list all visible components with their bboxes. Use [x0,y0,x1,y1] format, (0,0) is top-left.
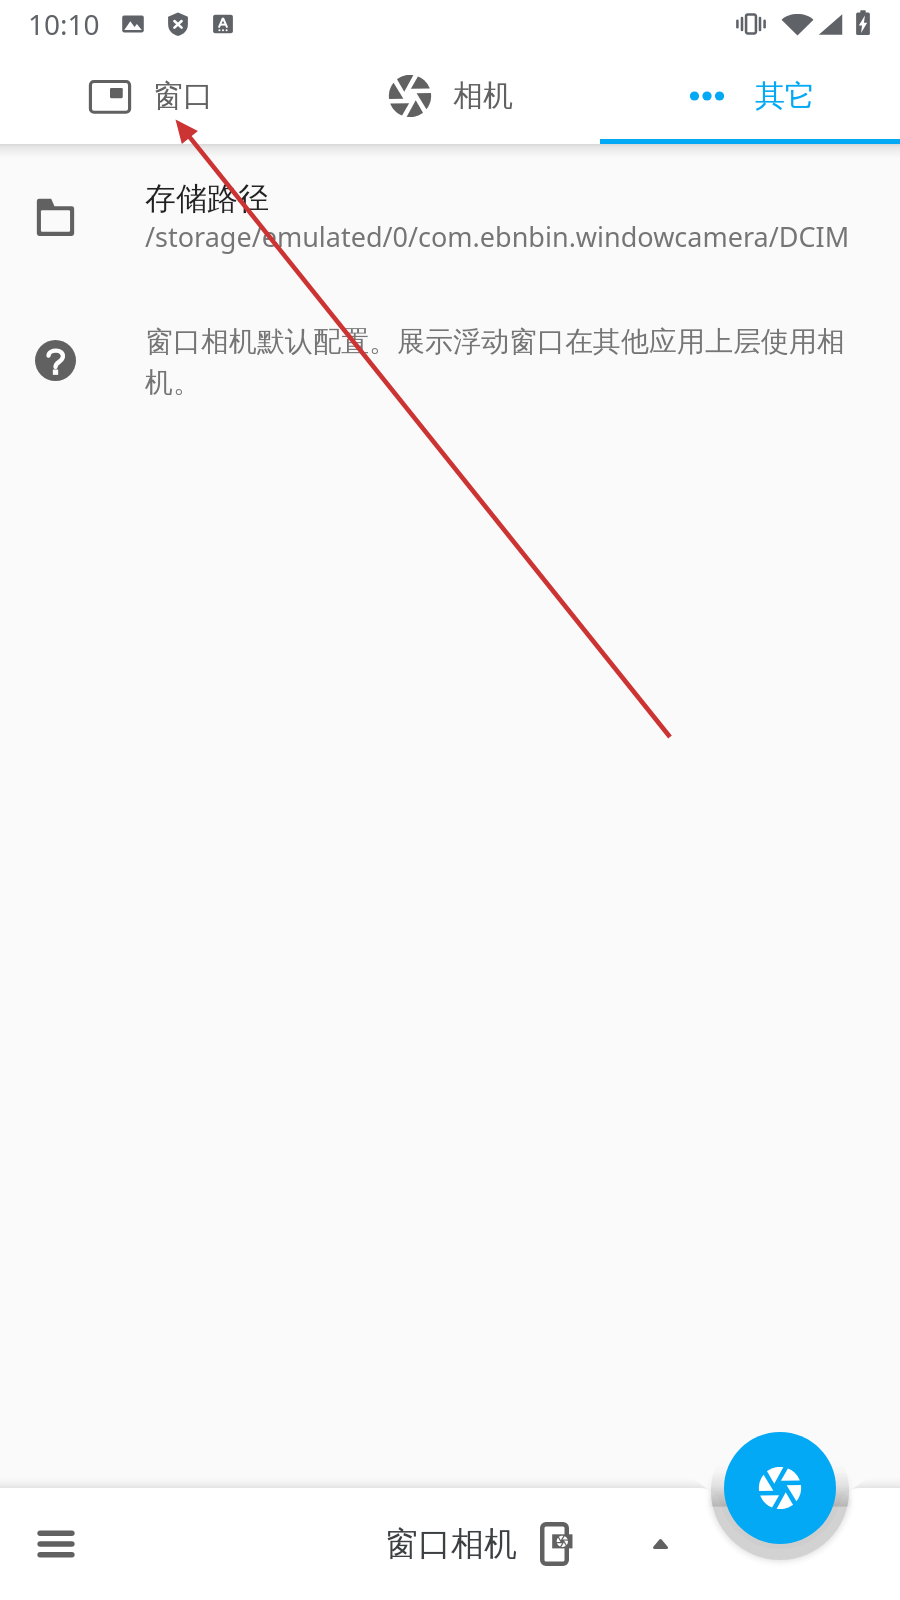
staticText: 其它 [755,77,815,115]
staticText: 存储路径 [145,179,269,218]
staticText: 相机 [453,77,513,115]
button[interactable]: 其它 [600,48,900,144]
button[interactable]: 窗口相机默认配置。展示浮动窗口在其他应用上层使用相机。 [0,289,900,439]
staticText: 10:10 [28,5,100,43]
button[interactable]: Open camera [724,1432,836,1544]
button[interactable]: Menu [14,1502,98,1586]
button[interactable]: 存储路径 [0,144,900,289]
staticText: 窗口 [153,77,213,115]
staticText: 窗口相机 [385,1523,517,1565]
button[interactable]: 窗口相机 [385,1488,668,1600]
button[interactable]: 窗口 [0,48,300,144]
staticText: 窗口相机默认配置。展示浮动窗口在其他应用上层使用相机。 [145,324,873,400]
staticText: /storage/emulated/0/com.ebnbin.windowcam… [145,218,850,255]
other: Expand [653,1539,668,1549]
button[interactable]: 相机 [300,48,600,144]
